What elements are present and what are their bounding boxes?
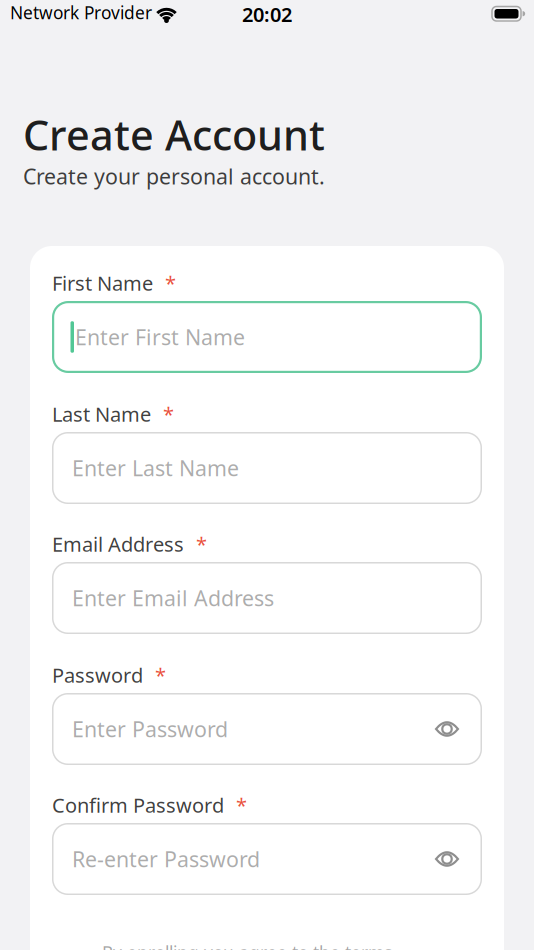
staticText: * xyxy=(163,401,174,427)
staticText: Enter Last Name xyxy=(72,454,239,482)
staticText: * xyxy=(196,531,207,557)
button[interactable]: By enrolling you agree to the terms xyxy=(102,941,392,950)
staticText: Create your personal account. xyxy=(23,162,325,190)
staticText: Enter Email Address xyxy=(72,584,274,612)
button[interactable]: Enter First Name xyxy=(52,301,482,373)
staticText: First Name xyxy=(52,270,153,296)
staticText: 20:02 xyxy=(242,1,292,28)
button[interactable]: Show password xyxy=(435,721,459,737)
button[interactable]: Re-enter Password xyxy=(52,823,482,895)
staticText: By enrolling you agree to the terms xyxy=(102,941,392,950)
staticText: Confirm Password xyxy=(52,792,224,818)
button[interactable]: Enter Last Name xyxy=(52,432,482,504)
staticText: * xyxy=(165,270,176,296)
staticText: * xyxy=(236,792,247,818)
staticText: Email Address xyxy=(52,531,184,557)
staticText: Enter Password xyxy=(72,715,228,743)
staticText: Last Name xyxy=(52,401,151,427)
staticText: * xyxy=(155,662,166,688)
staticText: Create Account xyxy=(23,107,325,162)
staticText: Password xyxy=(52,662,143,688)
button[interactable]: Show password xyxy=(435,851,459,867)
staticText: Network Provider xyxy=(10,1,152,24)
staticText: Re-enter Password xyxy=(72,845,260,873)
button[interactable]: Enter Email Address xyxy=(52,562,482,634)
button[interactable]: Enter Password xyxy=(52,693,482,765)
staticText: Enter First Name xyxy=(75,323,245,351)
